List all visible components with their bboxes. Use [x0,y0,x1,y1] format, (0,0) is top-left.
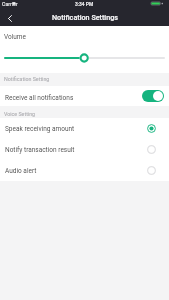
button[interactable]: Notify transaction result [0,139,169,160]
staticText: Receive all notifications [5,94,74,102]
staticText: Volume [4,33,27,41]
staticText: Voice Setting [4,111,36,117]
staticText: 3:34 PM [75,1,94,7]
staticText: Speak receiving amount [5,125,75,133]
staticText: Notify transaction result [5,146,75,154]
button[interactable]: Volume slider [0,52,169,64]
staticText: Audio alert [5,167,37,175]
button[interactable]: Speak receiving amount [0,118,169,139]
button[interactable]: Audio alert [0,160,169,181]
staticText: Carrier [2,1,18,7]
staticText: Notification Setting [4,76,50,82]
staticText: Notification Settings [52,13,118,21]
button[interactable]: Receive all notifications [0,86,169,106]
button[interactable]: Back [0,11,19,26]
